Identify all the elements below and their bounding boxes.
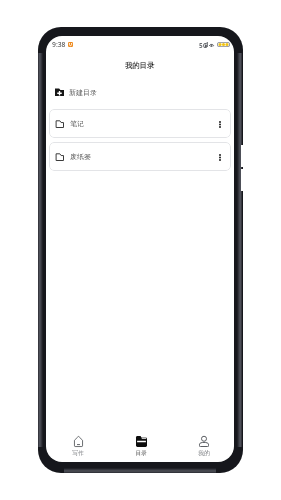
- staticText: 新建目录: [69, 88, 97, 97]
- staticText: 废纸篓: [70, 152, 91, 161]
- staticText: 目录: [135, 449, 147, 456]
- staticText: 我的目录: [125, 61, 155, 70]
- button[interactable]: 新建目录: [46, 86, 234, 98]
- button[interactable]: More options: [213, 117, 227, 131]
- staticText: 笔记: [70, 119, 84, 128]
- staticText: 我的: [198, 449, 210, 456]
- staticText: 5G: [199, 41, 208, 50]
- button[interactable]: 我的: [178, 436, 230, 456]
- staticText: 写作: [72, 449, 84, 456]
- button[interactable]: More options: [213, 150, 227, 164]
- button[interactable]: 写作: [52, 436, 104, 456]
- button[interactable]: 笔记: [49, 109, 231, 138]
- staticText: 9:38: [52, 40, 66, 49]
- button[interactable]: 废纸篓: [49, 142, 231, 171]
- button[interactable]: 目录: [115, 436, 167, 456]
